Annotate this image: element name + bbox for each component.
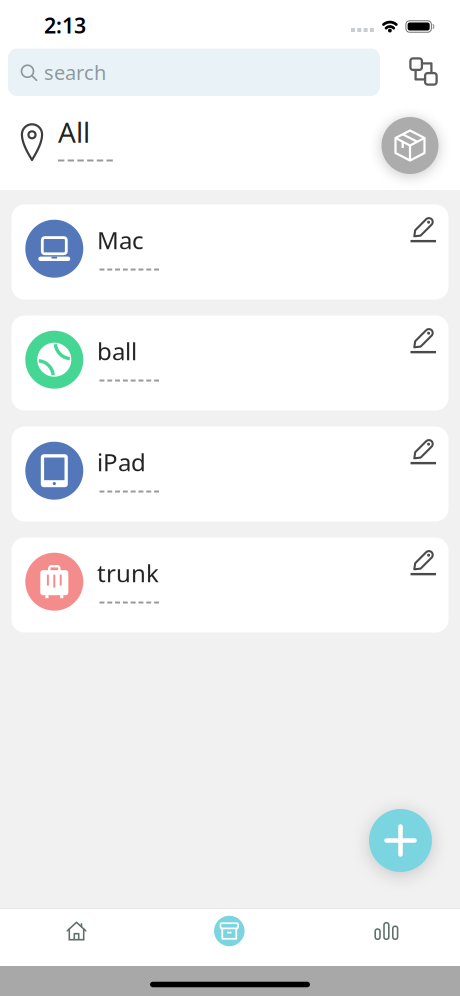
button[interactable]: Edit trunk bbox=[11, 537, 436, 632]
button[interactable]: Home bbox=[41, 908, 111, 954]
staticText: trunk bbox=[97, 557, 159, 589]
button[interactable]: trunk bbox=[11, 537, 448, 632]
button[interactable]: Items bbox=[201, 908, 257, 954]
button[interactable]: Edit ball bbox=[11, 315, 436, 410]
button[interactable]: Add item bbox=[369, 809, 432, 872]
button[interactable]: Mac bbox=[11, 204, 448, 299]
button[interactable]: iPad bbox=[11, 426, 448, 521]
staticText: ball bbox=[97, 335, 137, 367]
button[interactable]: Edit iPad bbox=[11, 426, 436, 521]
button[interactable]: Search bbox=[8, 48, 380, 96]
staticText: Mac bbox=[97, 224, 144, 256]
staticText: 2:13 bbox=[44, 11, 86, 39]
button[interactable]: Edit Mac bbox=[11, 204, 436, 299]
button[interactable]: Boxes bbox=[381, 117, 438, 174]
staticText: search bbox=[44, 59, 106, 86]
button[interactable]: Statistics bbox=[351, 908, 421, 954]
button[interactable]: ball bbox=[11, 315, 448, 410]
staticText: iPad bbox=[97, 446, 146, 478]
button[interactable]: Categories bbox=[380, 48, 460, 95]
staticText: All bbox=[58, 113, 90, 150]
